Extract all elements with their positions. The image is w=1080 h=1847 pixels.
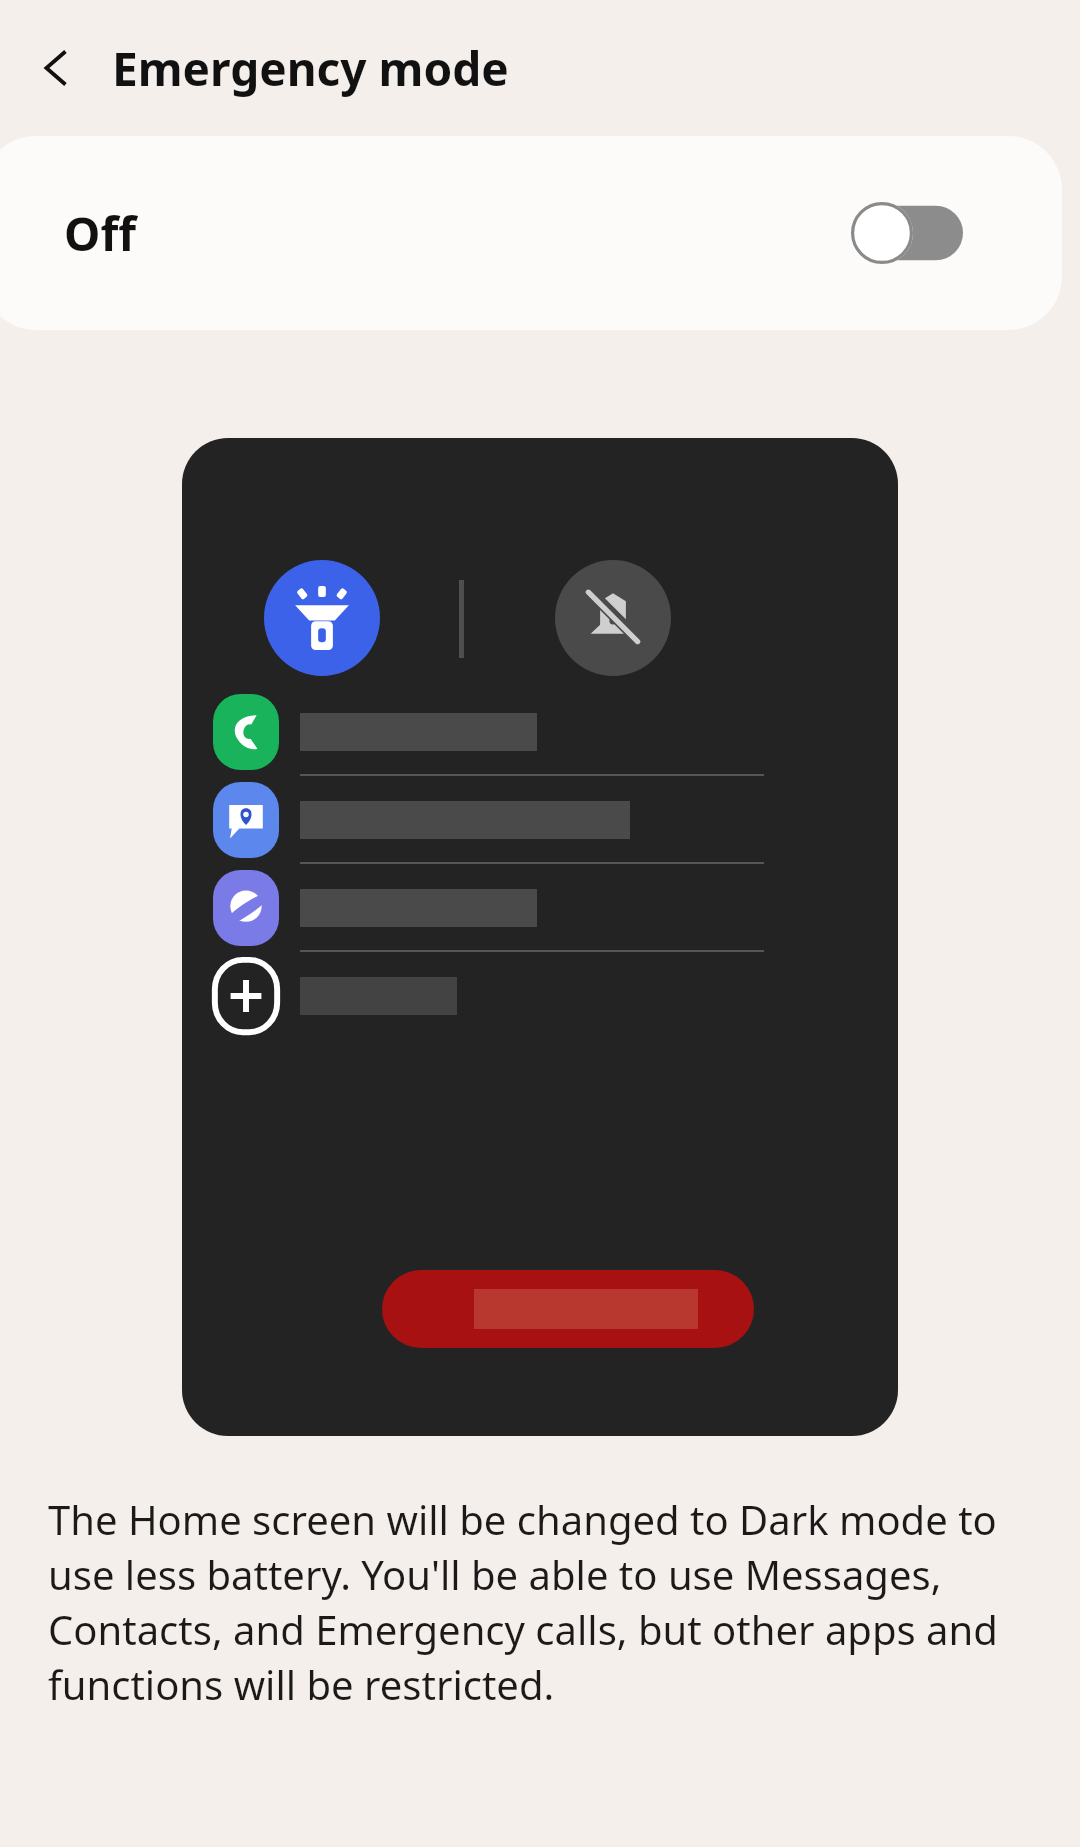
- other: Phone: [213, 694, 279, 770]
- button[interactable]: Emergency mode switch, off: [851, 202, 963, 264]
- button[interactable]: Flashlight: [182, 438, 898, 1436]
- button[interactable]: Off: [0, 136, 1062, 330]
- other: Add contact: [211, 956, 281, 1036]
- other: Messages: [213, 782, 279, 858]
- button[interactable]: Internet: [182, 864, 898, 952]
- button[interactable]: Flashlight: [264, 560, 380, 676]
- staticText: Off: [64, 202, 136, 265]
- button[interactable]: Mute: [555, 560, 671, 676]
- staticText: Emergency mode: [112, 37, 509, 100]
- other: Internet: [213, 870, 279, 946]
- button[interactable]: Phone: [182, 688, 898, 776]
- button[interactable]: Messages: [182, 776, 898, 864]
- button[interactable]: Add contact: [182, 952, 898, 1040]
- button[interactable]: Emergency call: [382, 1270, 754, 1348]
- staticText: The Home screen will be changed to Dark …: [48, 1492, 1040, 1712]
- button[interactable]: Back: [22, 34, 90, 102]
